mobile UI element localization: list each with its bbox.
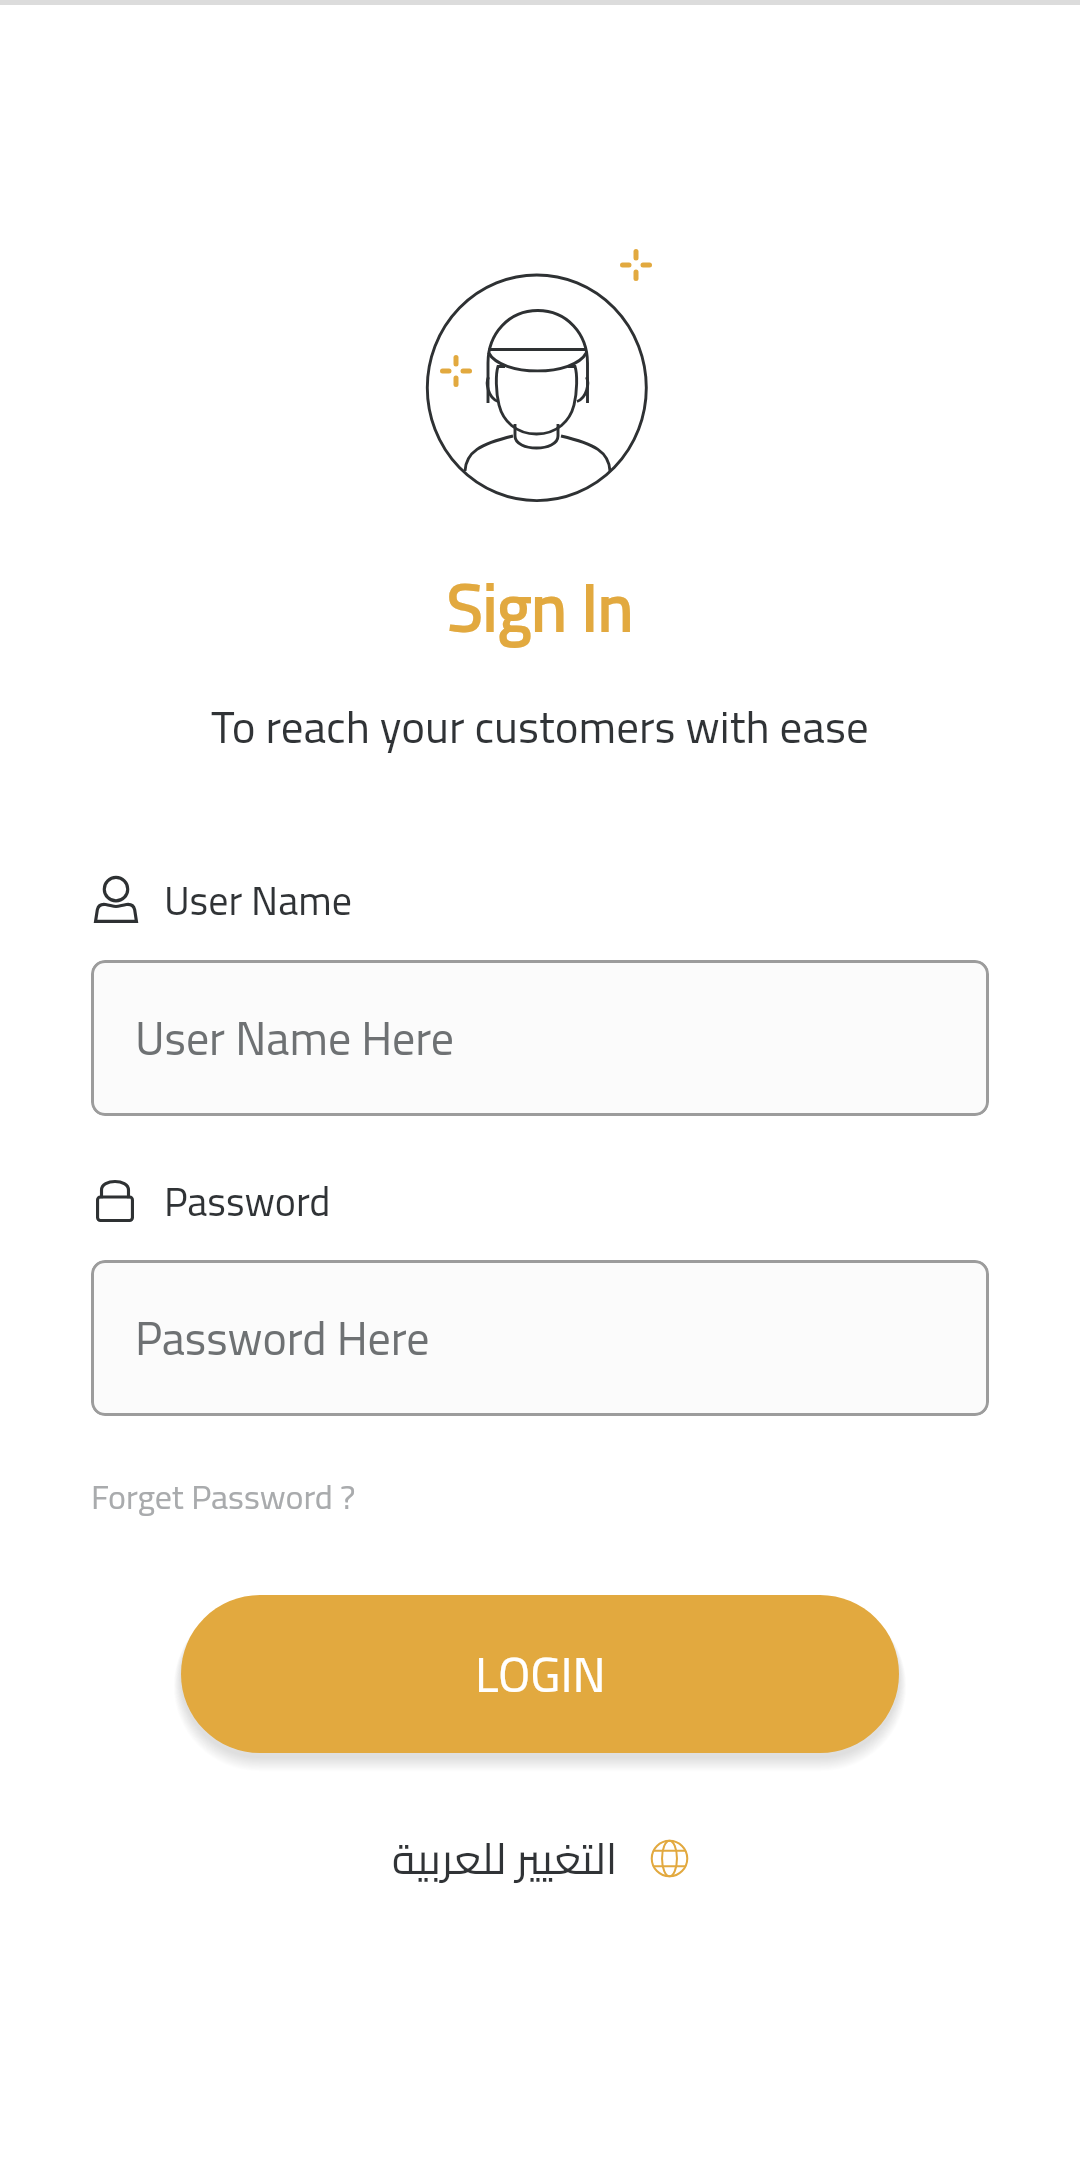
staticText: User Name xyxy=(164,863,352,938)
button[interactable]: User Name Here xyxy=(91,960,989,1116)
staticText: Password Here xyxy=(135,1295,430,1381)
button[interactable]: التغيير للعربية xyxy=(382,1812,698,1905)
staticText: User Name Here xyxy=(135,995,455,1081)
staticText: التغيير للعربية xyxy=(392,1818,618,1899)
staticText: Forget Password ? xyxy=(91,1465,356,1529)
button[interactable]: Forget Password ? xyxy=(91,1465,356,1529)
other: Change language xyxy=(651,1840,688,1877)
button[interactable]: Password Here xyxy=(91,1260,989,1416)
button[interactable]: LOGIN xyxy=(181,1595,899,1753)
staticText: Password xyxy=(164,1164,331,1239)
staticText: Sign In xyxy=(447,545,634,669)
staticText: To reach your customers with ease xyxy=(211,684,869,768)
staticText: LOGIN xyxy=(475,1628,606,1720)
